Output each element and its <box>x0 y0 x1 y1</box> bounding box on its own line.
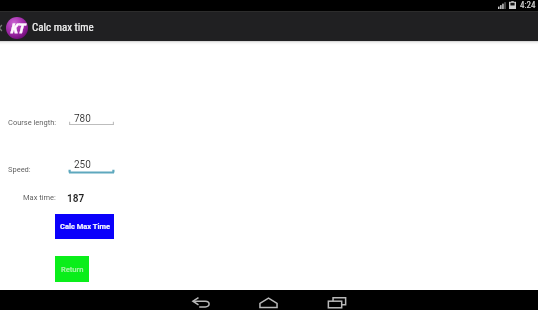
button[interactable]: Navigate up <box>0 11 27 41</box>
staticText: KT <box>10 21 25 36</box>
staticText: Calc Max Time <box>60 222 110 231</box>
button[interactable]: Back <box>186 294 216 310</box>
staticText: 187 <box>67 193 85 205</box>
staticText: Max time: <box>23 193 56 202</box>
button[interactable]: 250 <box>69 157 114 175</box>
button[interactable]: Recent apps <box>322 294 352 310</box>
button[interactable]: Calc Max Time <box>55 214 114 239</box>
staticText: 780 <box>74 113 91 125</box>
staticText: Course length: <box>8 118 57 127</box>
button[interactable]: 780 <box>69 111 114 129</box>
staticText: 4:24 <box>520 0 536 10</box>
staticText: Return <box>61 265 84 274</box>
button[interactable]: Return <box>55 256 89 282</box>
button[interactable]: Home <box>253 294 283 310</box>
staticText: Calc max time <box>32 21 94 34</box>
staticText: Speed: <box>8 165 31 174</box>
staticText: 250 <box>74 159 91 171</box>
